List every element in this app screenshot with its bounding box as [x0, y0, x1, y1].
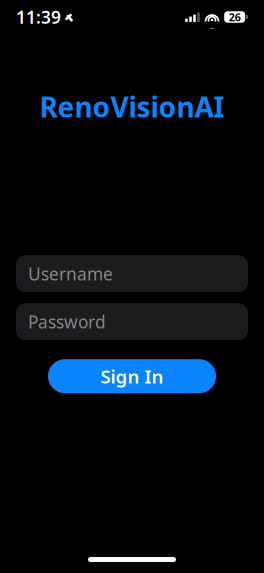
staticText: Sign In [100, 364, 163, 389]
staticText: Password [28, 310, 106, 333]
button[interactable]: Sign In [48, 359, 216, 393]
staticText: RenoVisionAI [39, 88, 224, 125]
staticText: 11:39 [16, 5, 61, 28]
staticText: Username [28, 262, 113, 285]
staticText: 26 [229, 10, 241, 24]
button[interactable]: Username [16, 255, 248, 292]
button[interactable]: Password [16, 303, 248, 340]
